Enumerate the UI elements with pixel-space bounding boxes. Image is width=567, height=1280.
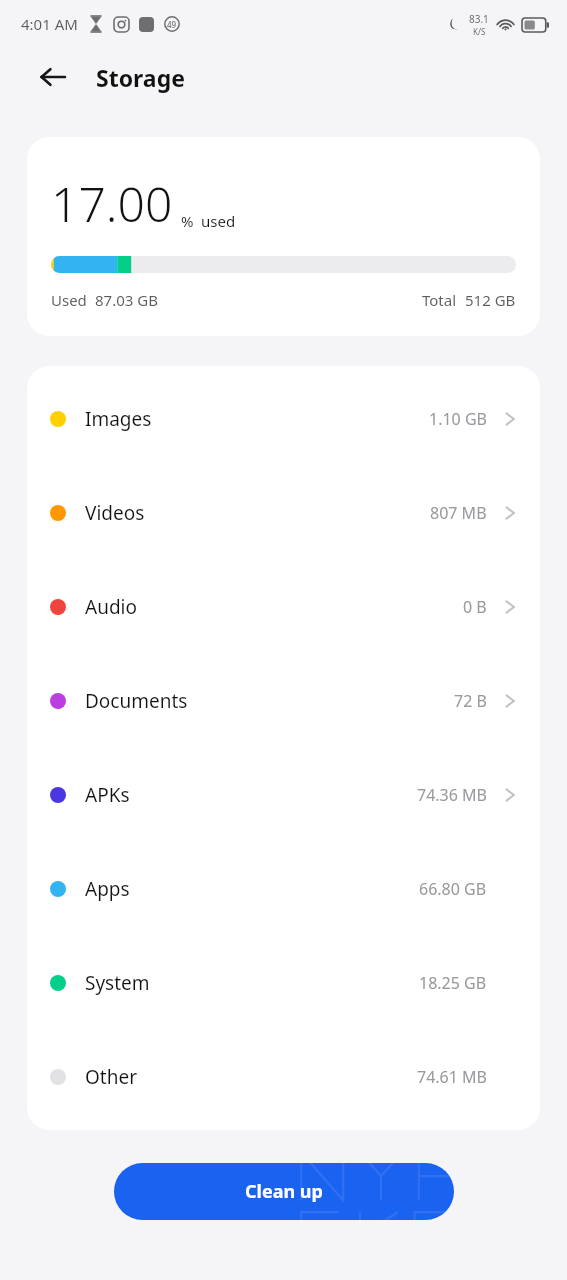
staticText: Apps [85, 876, 419, 902]
button[interactable]: APKs [27, 748, 540, 842]
staticText: System [85, 970, 419, 996]
staticText: % [181, 211, 194, 231]
staticText: 807 MB [430, 502, 487, 524]
button[interactable]: 17.00 [27, 137, 540, 336]
staticText: Audio [85, 594, 463, 620]
staticText: Total [422, 290, 457, 310]
button[interactable]: Audio [27, 560, 540, 654]
button[interactable]: Documents [27, 654, 540, 748]
button[interactable]: Clean up [114, 1163, 454, 1220]
staticText: APKs [85, 782, 417, 808]
staticText: 4:01 AM [21, 14, 78, 34]
button[interactable]: Other [27, 1030, 540, 1124]
staticText: 66.80 GB [419, 878, 487, 900]
button[interactable]: Back [29, 53, 77, 101]
staticText: used [201, 211, 236, 231]
staticText: K/S [473, 26, 486, 37]
staticText: 1.10 GB [429, 408, 487, 430]
staticText: 72 B [454, 690, 487, 712]
button[interactable]: Apps [27, 842, 540, 936]
staticText: 512 GB [465, 290, 516, 310]
staticText: 74.36 MB [417, 784, 487, 806]
button[interactable]: System [27, 936, 540, 1030]
staticText: 17.00 [51, 171, 173, 236]
staticText: Videos [85, 500, 430, 526]
button[interactable]: Videos [27, 466, 540, 560]
staticText: 74.61 MB [417, 1066, 487, 1088]
staticText: Storage [96, 62, 185, 93]
staticText: Clean up [245, 1179, 323, 1204]
staticText: Images [85, 406, 429, 432]
staticText: 87.03 GB [95, 290, 158, 310]
button[interactable]: Images [27, 372, 540, 466]
staticText: 83.1 [469, 12, 489, 26]
staticText: 49 [167, 19, 177, 30]
staticText: Used [51, 290, 87, 310]
staticText: Other [85, 1064, 417, 1090]
staticText: 0 B [463, 596, 487, 618]
staticText: Documents [85, 688, 454, 714]
staticText: 18.25 GB [419, 972, 487, 994]
